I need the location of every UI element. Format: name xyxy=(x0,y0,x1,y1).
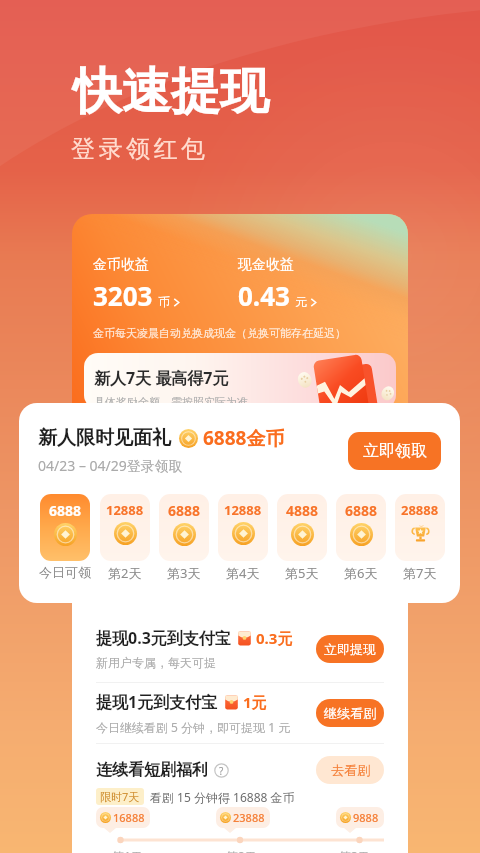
staticText: 连续看短剧福利 xyxy=(96,760,208,780)
staticText: 金币每天凌晨自动兑换成现金（兑换可能存在延迟） xyxy=(93,326,346,340)
staticText: 新人限时见面礼 xyxy=(38,426,171,450)
staticText: 新人7天 最高得7元 xyxy=(94,367,229,389)
staticText: 今日继续看剧 5 分钟，即可提现 1 元 xyxy=(96,719,291,735)
button[interactable]: 6888 xyxy=(159,494,209,561)
staticText: 新用户专属，每天可提 xyxy=(96,655,216,670)
staticText: 第2天 xyxy=(226,848,257,853)
staticText: 第1天 xyxy=(112,848,143,853)
staticText: 登录领红包 xyxy=(71,134,209,164)
staticText: 1元 xyxy=(243,692,267,712)
staticText: 第2天 xyxy=(108,564,142,582)
staticText: 提现1元到支付宝 xyxy=(96,691,218,713)
staticText: 看剧 15 分钟得 16888 金币 xyxy=(150,789,295,805)
staticText: 限时7天 xyxy=(100,789,140,804)
staticText: 6888 xyxy=(345,501,378,520)
staticText: 0.3元 xyxy=(256,628,293,648)
staticText: 12888 xyxy=(224,501,262,519)
staticText: 第3天 xyxy=(339,848,370,853)
button[interactable]: 提现0.3元到支付宝 xyxy=(72,627,408,670)
button[interactable]: 继续看剧 xyxy=(316,699,384,727)
button[interactable]: 去看剧 xyxy=(316,756,384,784)
button[interactable]: 立即提现 xyxy=(316,635,384,663)
staticText: 9888 xyxy=(353,810,379,825)
staticText: 提现0.3元到支付宝 xyxy=(96,627,231,649)
staticText: 立即提现 xyxy=(324,641,376,657)
staticText: 现金收益 xyxy=(238,256,294,274)
button[interactable]: 新人7天 最高得7元 xyxy=(84,353,396,409)
staticText: 04/23 – 04/29登录领取 xyxy=(38,456,183,475)
button[interactable]: 4888 xyxy=(277,494,327,561)
staticText: 6888金币 xyxy=(203,425,285,451)
staticText: 第7天 xyxy=(403,564,437,582)
button[interactable]: 6888 xyxy=(40,494,90,561)
staticText: 0.43 xyxy=(238,278,290,313)
staticText: 23888 xyxy=(233,810,265,825)
staticText: 币 xyxy=(158,294,170,309)
staticText: 16888 xyxy=(113,810,145,825)
staticText: 第3天 xyxy=(167,564,201,582)
staticText: 立即领取 xyxy=(363,441,427,461)
staticText: 3203 xyxy=(93,278,153,313)
staticText: 具体奖励金额，需按照实际为准 xyxy=(94,395,248,409)
staticText: 元 xyxy=(295,294,307,309)
button[interactable]: 12888 xyxy=(100,494,150,561)
staticText: 去看剧 xyxy=(331,762,370,778)
staticText: 快速提现 xyxy=(73,61,269,123)
button[interactable]: 提现1元到支付宝 xyxy=(72,691,408,735)
button[interactable]: 帮助 xyxy=(214,763,229,778)
staticText: ? xyxy=(219,764,224,778)
staticText: 6888 xyxy=(168,501,201,520)
staticText: 6888 xyxy=(49,501,82,520)
staticText: 第5天 xyxy=(285,564,319,582)
staticText: 今日可领 xyxy=(39,564,91,580)
staticText: 继续看剧 xyxy=(324,705,376,721)
staticText: 12888 xyxy=(106,501,144,519)
button[interactable]: 6888 xyxy=(336,494,386,561)
staticText: 28888 xyxy=(401,501,439,519)
button[interactable]: 立即领取 xyxy=(348,432,441,470)
button[interactable]: 12888 xyxy=(218,494,268,561)
staticText: 金币收益 xyxy=(93,256,149,274)
staticText: 第6天 xyxy=(344,564,378,582)
staticText: 4888 xyxy=(286,501,319,520)
staticText: 第4天 xyxy=(226,564,260,582)
button[interactable]: 28888 xyxy=(395,494,445,561)
